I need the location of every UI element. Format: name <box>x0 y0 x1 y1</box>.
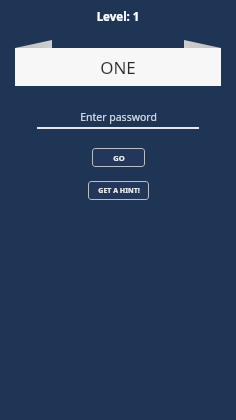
staticText: GO <box>113 153 125 163</box>
staticText: Level: 1 <box>0 9 236 25</box>
staticText: GET A HINT! <box>98 186 140 196</box>
staticText: ONE <box>0 56 236 79</box>
button[interactable]: Enter password <box>37 110 199 129</box>
button[interactable]: GET A HINT! <box>88 181 149 200</box>
staticText: Enter password <box>80 110 157 124</box>
button[interactable]: GO <box>92 148 145 167</box>
